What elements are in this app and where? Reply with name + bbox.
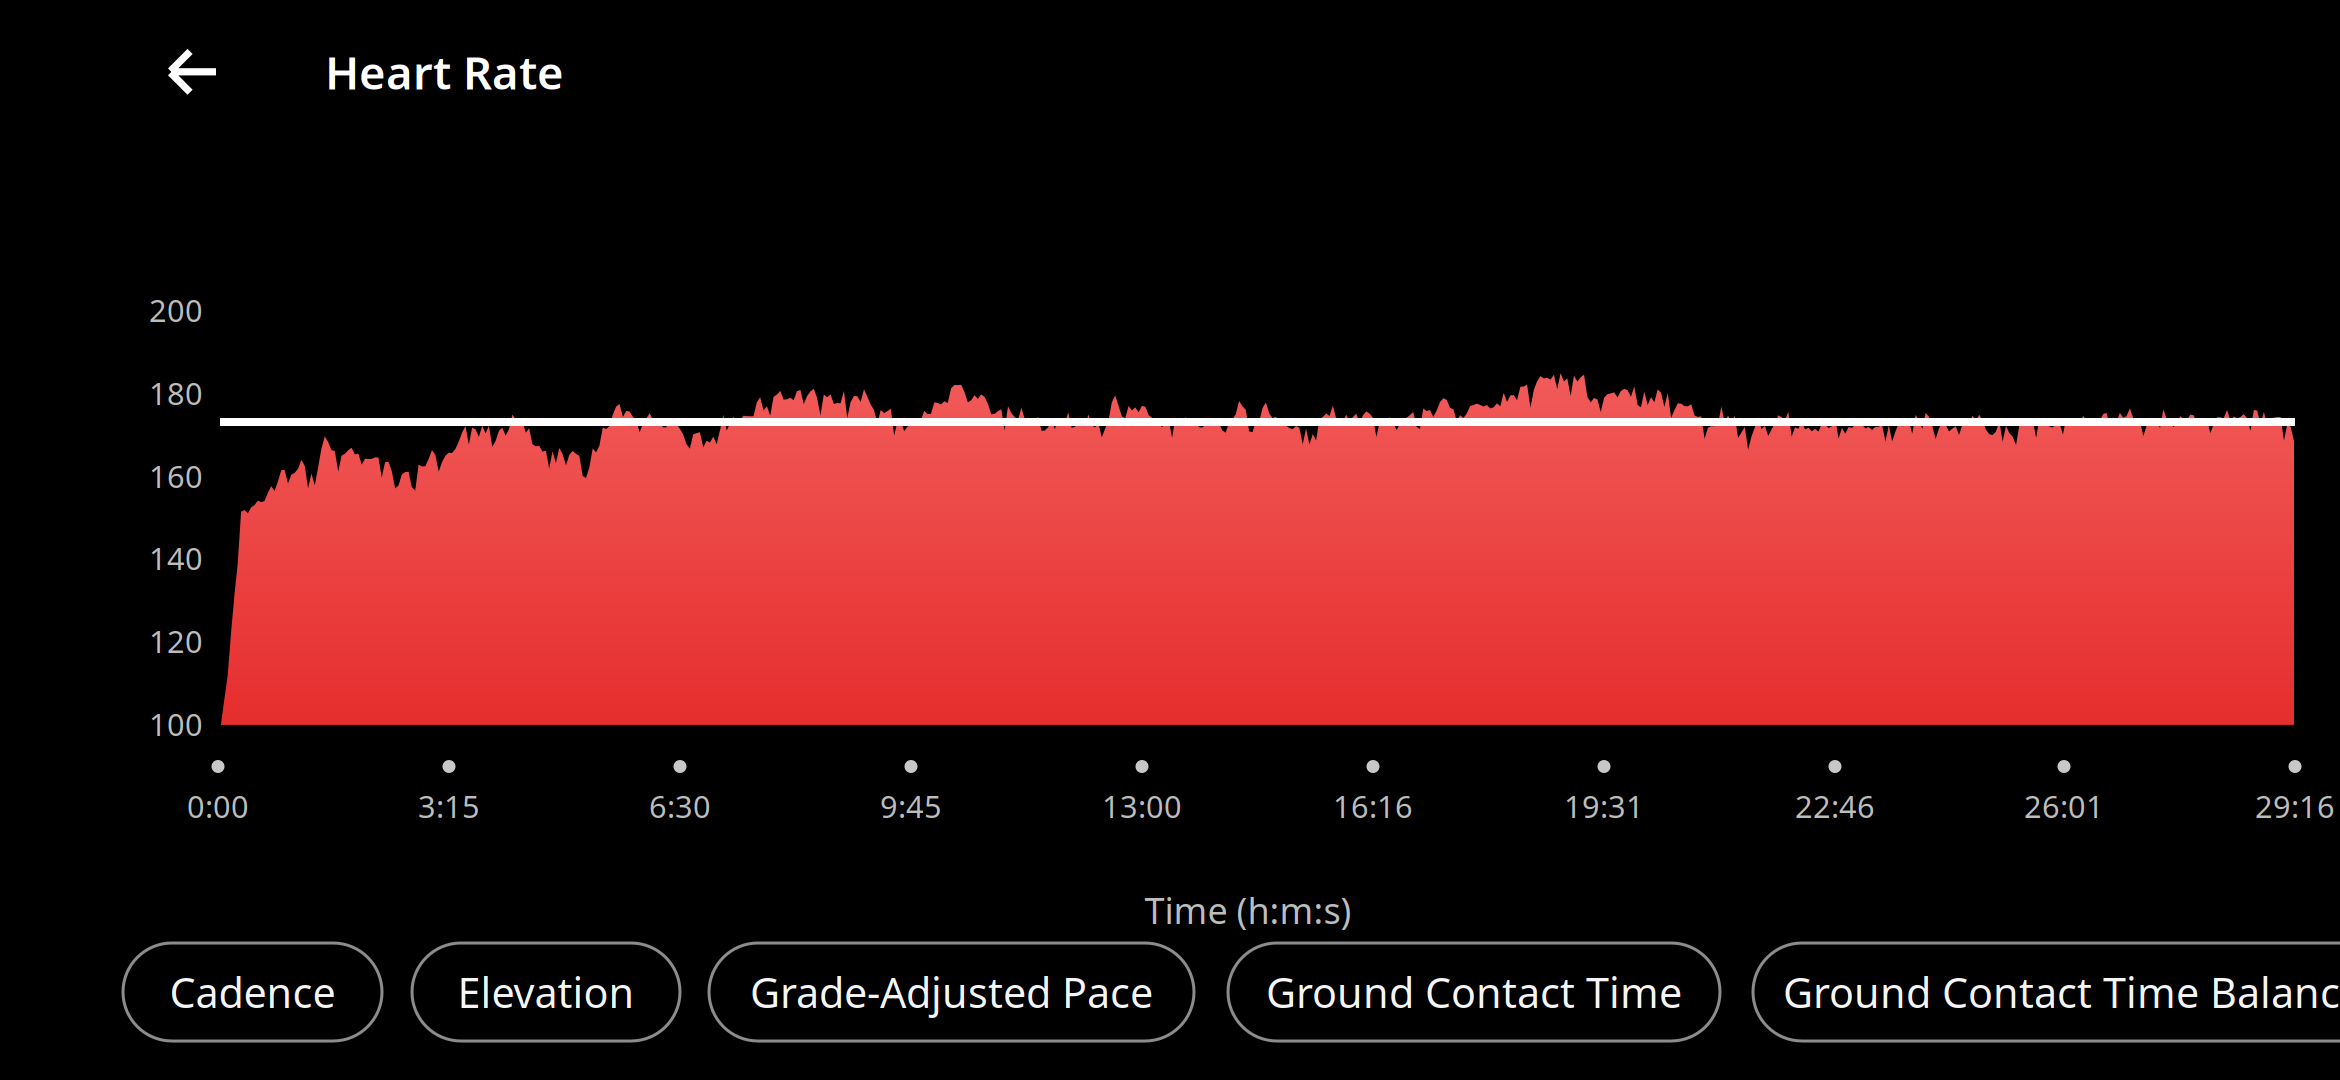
staticText: 140 xyxy=(149,538,203,578)
staticText: 200 xyxy=(149,290,203,330)
staticText: 13:00 xyxy=(1102,786,1182,826)
staticText: 100 xyxy=(149,704,203,744)
button[interactable]: Grade-Adjusted Pace xyxy=(709,943,1194,1041)
staticText: 160 xyxy=(149,456,203,496)
staticText: 22:46 xyxy=(1795,786,1875,826)
staticText: 16:16 xyxy=(1333,786,1413,826)
button[interactable]: Ground Contact Time xyxy=(1228,943,1720,1041)
button[interactable]: Ground Contact Time Balance xyxy=(1753,943,2340,1041)
staticText: Elevation xyxy=(457,965,634,1019)
staticText: Ground Contact Time xyxy=(1266,965,1682,1019)
button[interactable]: Elevation xyxy=(412,943,680,1041)
staticText: Grade-Adjusted Pace xyxy=(750,965,1153,1019)
staticText: 3:15 xyxy=(418,786,480,826)
staticText: 120 xyxy=(149,621,203,661)
staticText: Cadence xyxy=(169,965,335,1019)
staticText: 19:31 xyxy=(1564,786,1644,826)
button[interactable]: Cadence xyxy=(123,943,382,1041)
staticText: 180 xyxy=(149,373,203,413)
staticText: 9:45 xyxy=(880,786,942,826)
button[interactable]: Back xyxy=(149,29,235,115)
staticText: Time (h:m:s) xyxy=(1144,886,1351,934)
staticText: 0:00 xyxy=(187,786,249,826)
staticText: Heart Rate xyxy=(325,42,564,102)
staticText: 26:01 xyxy=(2024,786,2104,826)
staticText: 29:16 xyxy=(2255,786,2335,826)
staticText: Ground Contact Time Balance xyxy=(1783,965,2340,1019)
staticText: 6:30 xyxy=(649,786,711,826)
